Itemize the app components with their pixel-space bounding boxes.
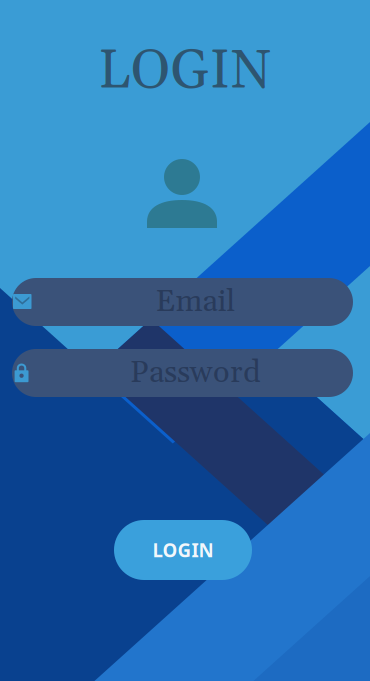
- button[interactable]: LOGIN: [114, 520, 252, 580]
- staticText: LOGIN: [98, 38, 271, 106]
- button[interactable]: Email: [12, 278, 353, 326]
- button[interactable]: Password: [12, 349, 353, 397]
- staticText: Password: [130, 353, 261, 392]
- staticText: Email: [155, 282, 235, 321]
- staticText: LOGIN: [152, 538, 213, 562]
